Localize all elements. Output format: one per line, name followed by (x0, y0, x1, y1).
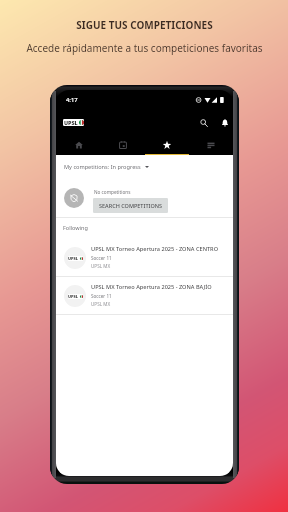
button[interactable]: Notifications (217, 115, 232, 130)
button[interactable]: Calendar (101, 133, 145, 155)
button[interactable]: SEARCH COMPETITIONS (93, 198, 168, 213)
staticText: UPSL MX Torneo Apertura 2025 - ZONA BAJÍ… (91, 283, 212, 291)
staticText: No competitions (94, 189, 131, 195)
button[interactable]: UPSL (56, 276, 233, 314)
staticText: Accede rápidamente a tus competiciones f… (26, 41, 263, 55)
button[interactable]: UPSL (63, 119, 84, 126)
staticText: My competitions: In progress (64, 163, 141, 171)
button[interactable]: My competitions: In progress (61, 160, 152, 174)
staticText: SIGUE TUS COMPETICIONES (76, 18, 213, 32)
staticText: Soccer 11 (91, 293, 112, 299)
staticText: UPSL (64, 119, 78, 126)
button[interactable]: News (189, 133, 233, 155)
staticText: UPSL (68, 256, 79, 261)
staticText: SEARCH COMPETITIONS (99, 202, 163, 209)
button[interactable]: Home (56, 133, 101, 155)
staticText: UPSL (68, 294, 79, 299)
staticText: 4:17 (66, 96, 78, 104)
staticText: Following (63, 224, 88, 231)
staticText: Soccer 11 (91, 255, 112, 261)
button[interactable]: UPSL (56, 238, 233, 276)
staticText: UPSL MX Torneo Apertura 2025 - ZONA CENT… (91, 245, 219, 253)
staticText: UPSL MX (91, 301, 111, 307)
staticText: UPSL MX (91, 263, 111, 269)
button[interactable]: Search (196, 115, 211, 130)
button[interactable]: Favorites (145, 133, 189, 155)
